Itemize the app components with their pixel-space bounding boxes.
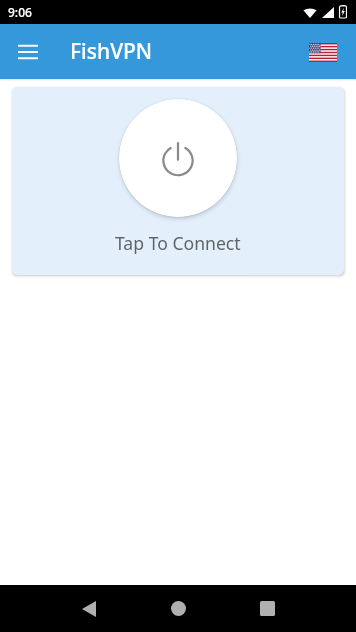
- staticText: FishVPN: [70, 37, 153, 66]
- staticText: 9:06: [8, 4, 32, 20]
- button[interactable]: Home: [134, 585, 223, 632]
- staticText: Tap To Connect: [115, 231, 241, 255]
- button[interactable]: Open navigation menu: [8, 32, 48, 72]
- button[interactable]: Select country: [303, 32, 343, 72]
- button[interactable]: Back: [44, 585, 133, 632]
- button[interactable]: Connect VPN: [119, 99, 237, 217]
- button[interactable]: Recent apps: [223, 585, 312, 632]
